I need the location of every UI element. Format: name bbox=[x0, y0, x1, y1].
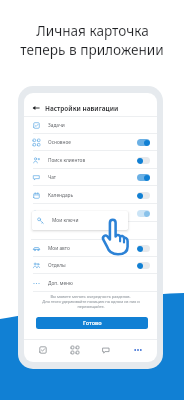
button[interactable]: Чат bbox=[94, 341, 118, 359]
button[interactable]: Задачи bbox=[31, 341, 55, 359]
staticText: Чат bbox=[48, 174, 57, 181]
other: Перетащить bbox=[100, 218, 130, 255]
button[interactable]: Приложения bbox=[63, 341, 87, 359]
button[interactable]: Календарь bbox=[24, 186, 157, 204]
staticText: Календарь bbox=[48, 192, 74, 199]
button[interactable]: Сотрудники bbox=[24, 204, 157, 222]
staticText: Мои ключи bbox=[52, 217, 79, 224]
button[interactable]: Назад bbox=[24, 101, 157, 115]
button[interactable] bbox=[137, 245, 150, 252]
button[interactable]: Основное bbox=[24, 133, 157, 151]
staticText: Вы можете менять очередность разделов. bbox=[50, 294, 131, 299]
staticText: Личная карточка bbox=[36, 21, 149, 40]
staticText: Для этого удерживайте позицию на одном и… bbox=[42, 299, 140, 304]
staticText: перемещайте. bbox=[77, 304, 105, 309]
button[interactable]: Доп. меню bbox=[24, 274, 157, 292]
button[interactable]: Ещё bbox=[126, 341, 150, 359]
button[interactable]: Мои ключи bbox=[32, 211, 128, 230]
button[interactable]: Готово bbox=[36, 317, 148, 329]
staticText: Доп. меню bbox=[48, 280, 73, 287]
staticText: Настройки навигации bbox=[45, 104, 119, 113]
staticText: теперь в приложении bbox=[20, 40, 164, 59]
button[interactable] bbox=[137, 262, 150, 269]
button[interactable] bbox=[137, 210, 150, 217]
staticText: Готово bbox=[83, 319, 102, 327]
other: Назад bbox=[32, 104, 40, 112]
button[interactable]: Отделы bbox=[24, 256, 157, 274]
staticText: Задачи bbox=[48, 122, 65, 129]
button[interactable] bbox=[137, 174, 150, 181]
button[interactable] bbox=[137, 139, 150, 146]
button[interactable]: Чат bbox=[24, 168, 157, 186]
staticText: Мои авто bbox=[48, 245, 70, 252]
button[interactable] bbox=[137, 192, 150, 199]
button[interactable]: Поиск клиентов bbox=[24, 151, 157, 169]
button[interactable]: Мои авто bbox=[24, 239, 157, 257]
staticText: Основное bbox=[48, 139, 71, 146]
staticText: Отделы bbox=[48, 262, 66, 269]
staticText: Поиск клиентов bbox=[48, 157, 86, 164]
button[interactable] bbox=[137, 157, 150, 164]
button[interactable]: Задачи bbox=[24, 116, 157, 134]
